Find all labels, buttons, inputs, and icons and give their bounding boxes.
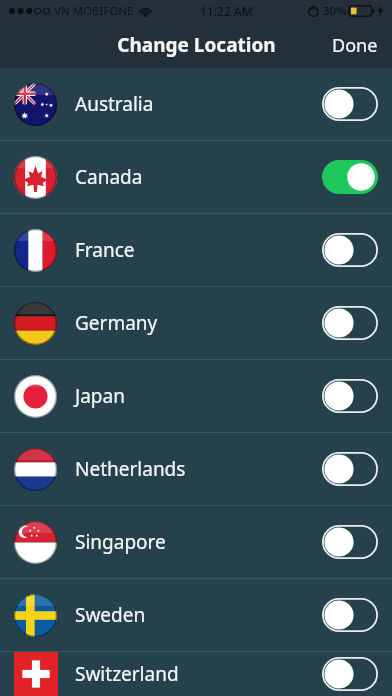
staticText: 30% bbox=[323, 3, 346, 19]
button[interactable]: Germany bbox=[0, 287, 392, 359]
staticText: France bbox=[75, 237, 135, 263]
button[interactable]: Sweden bbox=[0, 579, 392, 651]
button[interactable]: Toggle off bbox=[322, 452, 378, 486]
button[interactable]: Singapore bbox=[0, 506, 392, 578]
staticText: VN MOBIFONE bbox=[54, 3, 134, 19]
button[interactable]: Canada bbox=[0, 141, 392, 213]
staticText: Done bbox=[332, 33, 378, 58]
button[interactable]: Toggle off bbox=[322, 379, 378, 413]
button[interactable]: Japan bbox=[0, 360, 392, 432]
button[interactable]: Switzerland bbox=[0, 652, 392, 696]
button[interactable]: Toggle off bbox=[322, 233, 378, 267]
staticText: Netherlands bbox=[75, 456, 186, 482]
button[interactable]: France bbox=[0, 214, 392, 286]
button[interactable]: Toggle off bbox=[322, 306, 378, 340]
button[interactable]: Toggle off bbox=[322, 87, 378, 121]
button[interactable]: Toggle off bbox=[322, 598, 378, 632]
button[interactable]: Done bbox=[318, 25, 392, 66]
staticText: Germany bbox=[75, 310, 158, 336]
button[interactable]: Toggle off bbox=[322, 525, 378, 559]
staticText: Canada bbox=[75, 164, 143, 190]
button[interactable]: Toggle off bbox=[322, 657, 378, 691]
button[interactable]: Australia bbox=[0, 68, 392, 140]
staticText: Switzerland bbox=[75, 661, 179, 687]
staticText: Singapore bbox=[75, 529, 166, 555]
staticText: Japan bbox=[75, 383, 125, 409]
button[interactable]: Toggle on bbox=[322, 160, 378, 194]
staticText: Australia bbox=[75, 91, 154, 117]
staticText: Sweden bbox=[75, 602, 146, 628]
staticText: Change Location bbox=[117, 32, 276, 58]
staticText: 11:22 AM bbox=[200, 3, 253, 19]
button[interactable]: Netherlands bbox=[0, 433, 392, 505]
